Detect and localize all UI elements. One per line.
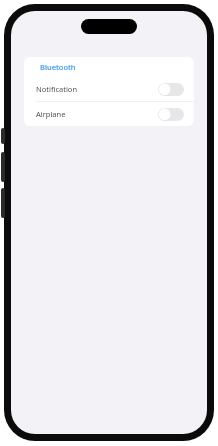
button[interactable]: Notification (24, 77, 194, 101)
button[interactable]: Airplane toggle, off (158, 108, 184, 121)
button[interactable]: Airplane (24, 102, 194, 126)
button[interactable]: Notification toggle, off (158, 83, 184, 96)
staticText: Bluetooth (40, 62, 76, 72)
staticText: Airplane (36, 109, 66, 119)
staticText: Notification (36, 84, 78, 94)
